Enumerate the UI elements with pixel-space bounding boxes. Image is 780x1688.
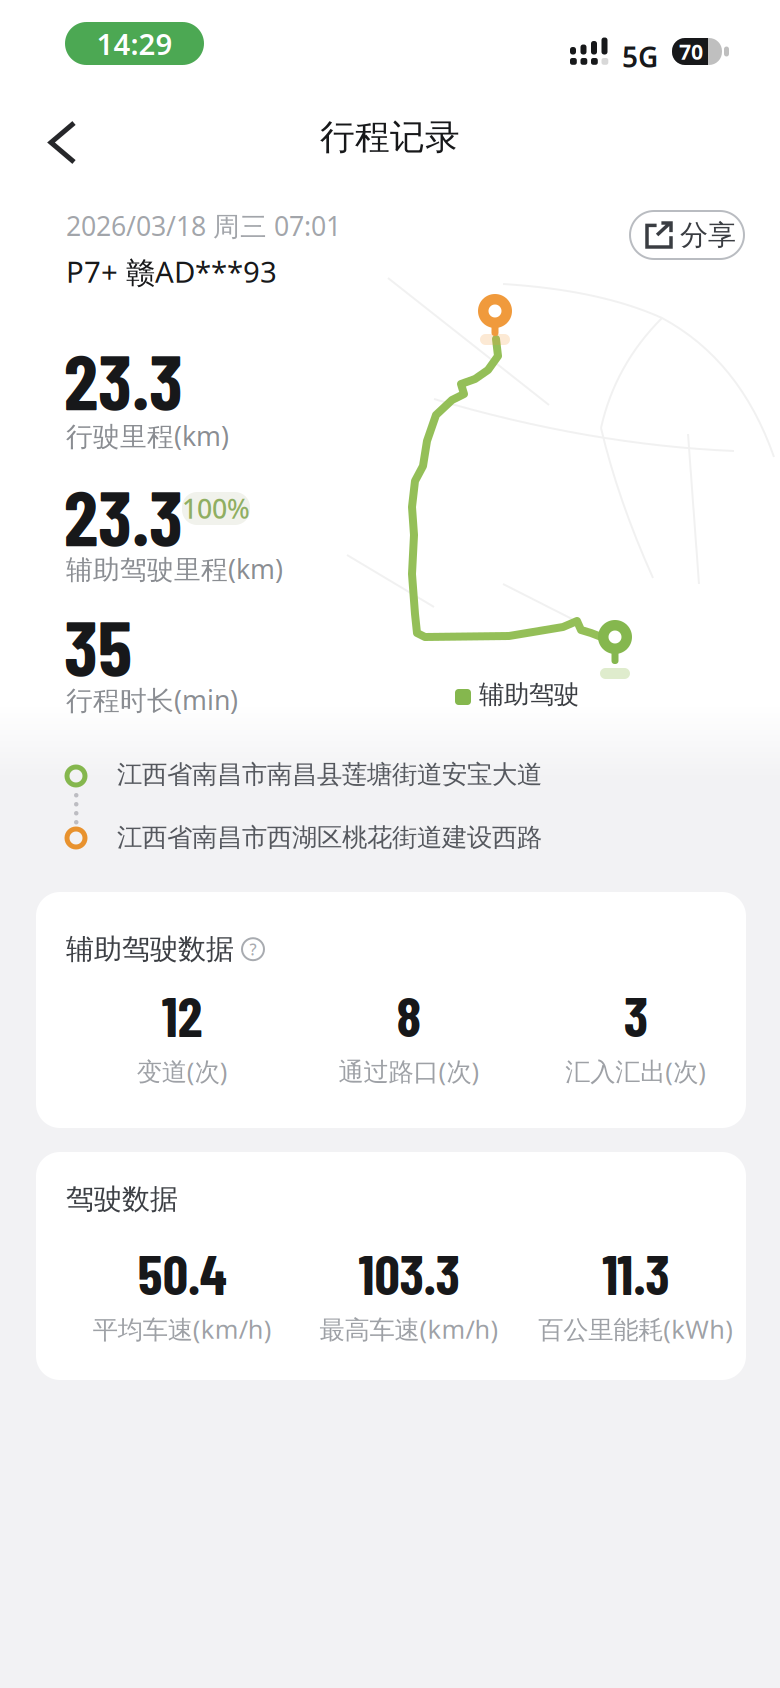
staticText: ? [249,939,256,960]
staticText: P7+ 赣AD***93 [66,252,277,291]
staticText: 8 [396,981,421,1048]
staticText: 23.3 [64,469,183,562]
staticText: 50.4 [138,1239,227,1306]
staticText: 103.3 [358,1239,459,1306]
staticText: 5G [622,38,658,75]
staticText: 江西省南昌市西湖区桃花街道建设西路 [117,822,542,853]
staticText: 平均车速(km/h) [93,1312,272,1346]
staticText: 百公里能耗(kWh) [538,1312,733,1346]
button[interactable]: Back [39,111,86,174]
staticText: 3 [624,981,648,1048]
staticText: 行程记录 [320,116,460,159]
staticText: 最高车速(km/h) [319,1312,498,1346]
button[interactable]: Share [630,211,744,259]
staticText: 行程时长(min) [66,682,238,717]
staticText: 辅助驾驶 [479,679,579,710]
staticText: 江西省南昌市南昌县莲塘街道安宝大道 [117,759,542,790]
staticText: 35 [64,599,132,692]
staticText: 23.3 [64,333,183,426]
staticText: 辅助驾驶里程(km) [66,551,283,586]
button[interactable]: About assisted driving data [242,938,264,960]
staticText: 变道(次) [137,1054,228,1088]
staticText: 2026/03/18 周三 07:01 [66,208,341,243]
staticText: 行驶里程(km) [66,418,229,453]
staticText: 辅助驾驶数据 [66,932,234,966]
staticText: 汇入汇出(次) [565,1054,706,1088]
staticText: 11.3 [602,1239,669,1306]
staticText: 70 [679,37,703,66]
staticText: 14:29 [96,24,172,63]
staticText: 100% [182,491,250,526]
staticText: 驾驶数据 [66,1182,178,1216]
staticText: 分享 [680,218,736,252]
staticText: 12 [162,981,203,1048]
staticText: 通过路口(次) [338,1054,479,1088]
